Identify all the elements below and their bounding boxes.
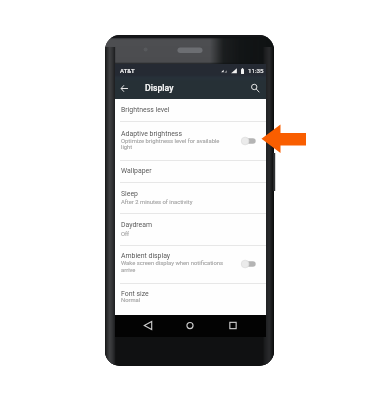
staticText: Display [145, 83, 174, 93]
staticText: Font size [121, 290, 149, 298]
button[interactable]: Home [180, 315, 200, 336]
staticText: Wake screen display when notifications [121, 260, 224, 267]
staticText: Daydream [121, 221, 153, 229]
button[interactable]: Search [245, 76, 265, 100]
staticText: Normal [121, 297, 141, 304]
staticText: Optimize brightness level for available [121, 138, 220, 145]
staticText: Brightness level [121, 106, 170, 114]
staticText: arrive [121, 267, 136, 274]
staticText: Adaptive brightness [121, 130, 182, 138]
button[interactable]: Toggle Ambient display [239, 257, 258, 271]
button[interactable]: Recent apps [223, 315, 243, 336]
button[interactable] [115, 122, 266, 161]
button[interactable] [115, 284, 266, 315]
staticText: After 2 minutes of inactivity [121, 199, 193, 206]
staticText: light [121, 144, 133, 151]
button[interactable]: Navigate up [115, 76, 134, 100]
staticText: AT&T [120, 67, 135, 74]
staticText: Ambient display [121, 252, 171, 260]
staticText: Sleep [121, 190, 138, 198]
staticText: 11:35 [248, 67, 264, 74]
button[interactable] [115, 99, 266, 122]
staticText: Off [121, 231, 130, 238]
button[interactable] [115, 161, 266, 183]
button[interactable] [115, 183, 266, 214]
staticText: Wallpaper [121, 167, 152, 175]
button[interactable]: Back [138, 315, 158, 336]
button[interactable] [115, 246, 266, 284]
button[interactable]: Toggle Adaptive brightness [239, 134, 258, 148]
button[interactable] [115, 214, 266, 246]
